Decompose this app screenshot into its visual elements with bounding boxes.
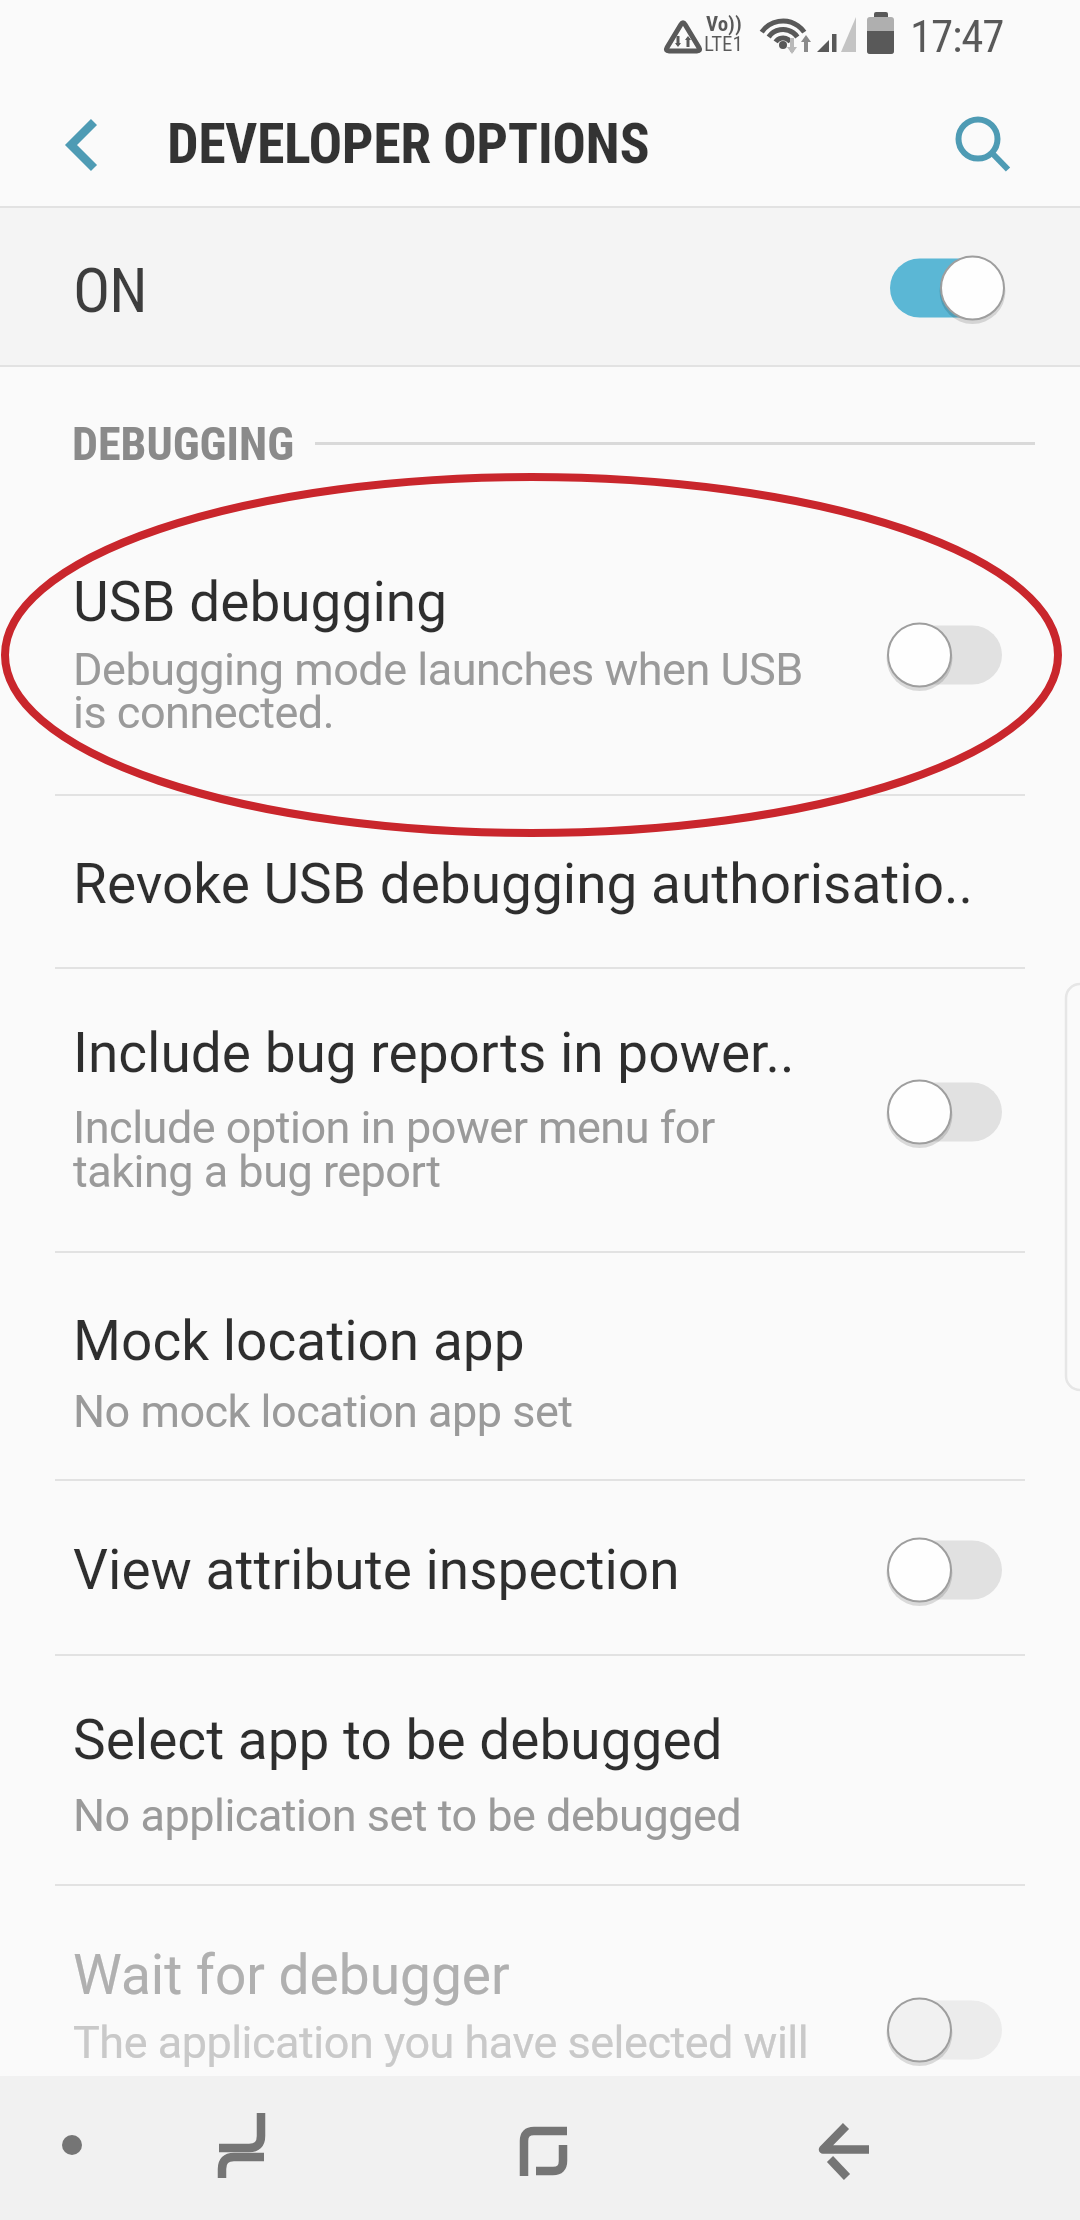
staticText: 17:47: [910, 10, 1004, 63]
button[interactable]: Wait for debugger: [0, 1886, 1080, 2076]
button[interactable]: [890, 619, 1020, 691]
button[interactable]: Select app to be debugged: [0, 1656, 1080, 1884]
staticText: View attribute inspection: [73, 1538, 680, 1602]
button[interactable]: [890, 1076, 1020, 1148]
button[interactable]: [890, 1534, 1020, 1606]
button[interactable]: [945, 105, 1020, 180]
button[interactable]: [40, 2110, 110, 2180]
staticText: Include option in power menu for taking …: [73, 1101, 715, 1198]
button[interactable]: Include bug reports in power..: [0, 969, 1080, 1252]
staticText: No mock location app set: [73, 1385, 573, 1438]
button[interactable]: [495, 2105, 590, 2200]
staticText: No application set to be debugged: [73, 1789, 742, 1842]
staticText: Debugging mode launches when USB is conn…: [73, 643, 803, 739]
staticText: DEVELOPER OPTIONS: [167, 111, 650, 177]
button[interactable]: Revoke USB debugging authorisatio..: [0, 796, 1080, 967]
staticText: The application you have selected will: [73, 2016, 809, 2069]
staticText: Vo)): [706, 12, 742, 37]
button[interactable]: ON: [0, 208, 1080, 365]
staticText: Mock location app: [73, 1309, 525, 1373]
button[interactable]: [195, 2105, 290, 2200]
button[interactable]: [795, 2105, 890, 2200]
button[interactable]: [890, 1994, 1020, 2066]
staticText: Select app to be debugged: [73, 1708, 723, 1772]
staticText: LTE1: [704, 32, 743, 57]
staticText: ON: [73, 254, 147, 327]
staticText: DEBUGGING: [72, 417, 295, 471]
button[interactable]: [890, 252, 1020, 324]
staticText: Revoke USB debugging authorisatio..: [73, 852, 974, 916]
staticText: USB debugging: [73, 570, 448, 634]
button[interactable]: Mock location app: [0, 1253, 1080, 1479]
button[interactable]: USB debugging: [0, 470, 1080, 794]
button[interactable]: [50, 115, 110, 175]
staticText: Include bug reports in power..: [73, 1021, 795, 1085]
staticText: Wait for debugger: [73, 1943, 510, 2007]
button[interactable]: View attribute inspection: [0, 1481, 1080, 1654]
